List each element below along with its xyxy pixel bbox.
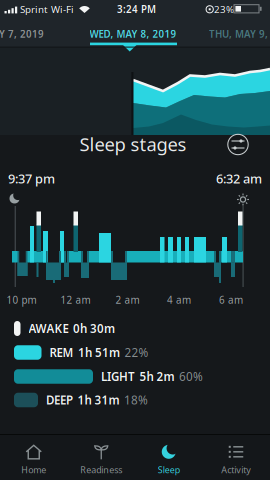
staticText: Sleep (158, 464, 180, 476)
staticText: Readiness (80, 464, 122, 476)
staticText: 1h 51m (78, 345, 120, 360)
staticText: DEEP (46, 392, 73, 408)
staticText: Home (21, 464, 46, 476)
staticText: WED, MAY 8, 2019 (89, 27, 176, 41)
staticText: 3:24 PM (117, 2, 156, 16)
staticText: AWAKE (28, 321, 68, 336)
staticText: 2 am (115, 293, 139, 307)
button[interactable]: TUE, MAY 7, 2019 (0, 27, 44, 41)
staticText: 6:32 am (216, 170, 262, 187)
staticText: Activity (221, 464, 251, 476)
staticText: 9:37 pm (8, 170, 55, 187)
button[interactable]: THU, MAY 9, 2019 (209, 27, 270, 41)
staticText: 6 am (219, 293, 243, 307)
staticText: 0h 30m (73, 321, 115, 336)
button[interactable]: WED, MAY 8, 2019 (89, 27, 176, 41)
staticText: Sprint Wi-Fi (20, 2, 74, 16)
button[interactable]: Chart settings (227, 133, 249, 155)
staticText: 5h 2m (139, 369, 174, 384)
staticText: 4 am (167, 293, 191, 307)
staticText: REM (49, 345, 73, 360)
staticText: TUE, MAY 7, 2019 (0, 27, 44, 41)
staticText: Sleep stages (79, 131, 186, 157)
button[interactable]: Home (0, 433, 67, 480)
staticText: 60% (179, 368, 203, 384)
staticText: 23% (214, 2, 234, 16)
staticText: LIGHT (101, 369, 135, 384)
staticText: 10 pm (6, 293, 36, 307)
button[interactable]: Activity (202, 433, 270, 480)
staticText: 1h 31m (77, 392, 119, 408)
staticText: 12 am (60, 293, 90, 307)
staticText: 22% (124, 344, 148, 360)
button[interactable]: Sleep (135, 433, 202, 480)
button[interactable]: Readiness (67, 433, 135, 480)
staticText: 18% (124, 392, 148, 408)
staticText: THU, MAY 9, 2019 (209, 27, 270, 41)
